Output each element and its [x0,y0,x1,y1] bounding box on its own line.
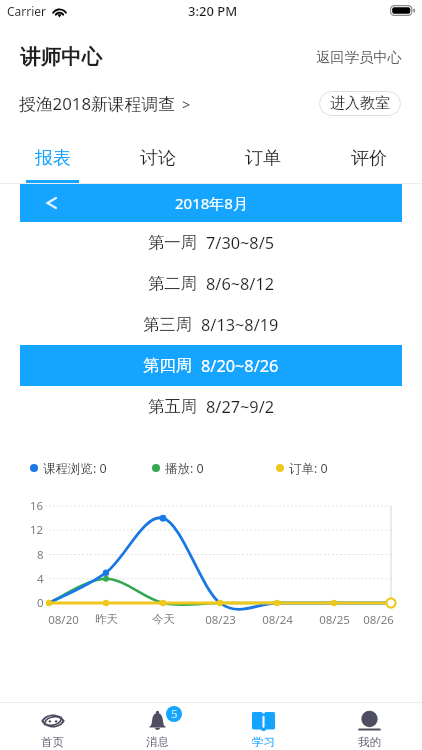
staticText: 消息 [146,735,169,749]
button[interactable]: Messages [105,703,210,750]
staticText: 8/6~8/12 [206,273,275,295]
other: Profile [358,710,381,731]
staticText: 第三周 [143,314,192,335]
staticText: 订单 [245,147,281,170]
staticText: 0 [37,595,44,611]
staticText: 播放: 0 [165,460,204,477]
staticText: 7/30~8/5 [206,232,275,254]
staticText: 8 [37,547,44,563]
button[interactable]: 返回学员中心 [316,48,422,66]
staticText: 今天 [152,612,175,626]
button[interactable]: 订单: 0 [276,458,328,478]
staticText: 订单: 0 [289,460,328,477]
other: Messages [149,710,166,731]
staticText: 学习 [252,735,275,749]
staticText: 8/27~9/2 [206,396,275,418]
staticText: 8/20~8/26 [201,355,279,377]
button[interactable]: 第三周 [20,304,402,345]
staticText: 08/26 [363,612,394,626]
button[interactable]: 课程浏览: 0 [30,458,107,478]
staticText: 3:20 PM [188,2,238,20]
staticText: 第一周 [148,232,197,253]
other: Study [252,711,275,731]
staticText: 第五周 [148,396,197,417]
button[interactable]: 评价 [316,132,422,184]
staticText: 16 [30,498,44,514]
button[interactable]: 报表 [0,132,105,184]
button[interactable]: 第一周 [20,222,402,263]
staticText: 4 [37,571,44,587]
staticText: 报表 [35,147,71,170]
button[interactable]: 授渔2018新课程调查 [0,92,191,115]
staticText: 8/13~8/19 [201,314,279,336]
staticText: 昨天 [95,612,118,626]
staticText: 12 [30,522,44,538]
button[interactable]: Previous month [20,184,402,222]
staticText: 5 [171,706,178,722]
staticText: 08/25 [319,612,350,626]
staticText: 首页 [41,735,64,749]
button[interactable]: 讨论 [105,132,210,184]
button[interactable]: 进入教室 [319,91,401,116]
staticText: 08/24 [262,612,293,626]
button[interactable]: Study [210,703,316,750]
other: Previous month [47,198,56,208]
staticText: 授渔2018新课程调查 [19,92,176,115]
button[interactable]: 第五周 [20,386,402,427]
other: Home [41,712,65,730]
staticText: 08/20 [48,612,79,626]
button[interactable]: Profile [316,703,422,750]
staticText: 进入教室 [330,94,390,113]
staticText: 2018年8月 [175,193,248,213]
staticText: 讲师中心 [20,44,102,70]
button[interactable]: 订单 [210,132,316,184]
staticText: 08/23 [205,612,236,626]
button[interactable]: 第四周 [20,345,402,386]
staticText: 第四周 [143,355,192,376]
staticText: 讨论 [140,147,176,170]
staticText: 课程浏览: 0 [43,460,107,477]
staticText: 我的 [358,735,381,749]
staticText: 第二周 [148,273,197,294]
staticText: 评价 [351,147,387,170]
staticText: 返回学员中心 [316,48,402,66]
staticText: > [182,94,191,114]
staticText: Carrier [7,3,47,19]
button[interactable]: 第二周 [20,263,402,304]
button[interactable]: Home [0,703,105,750]
button[interactable]: 播放: 0 [152,458,204,478]
